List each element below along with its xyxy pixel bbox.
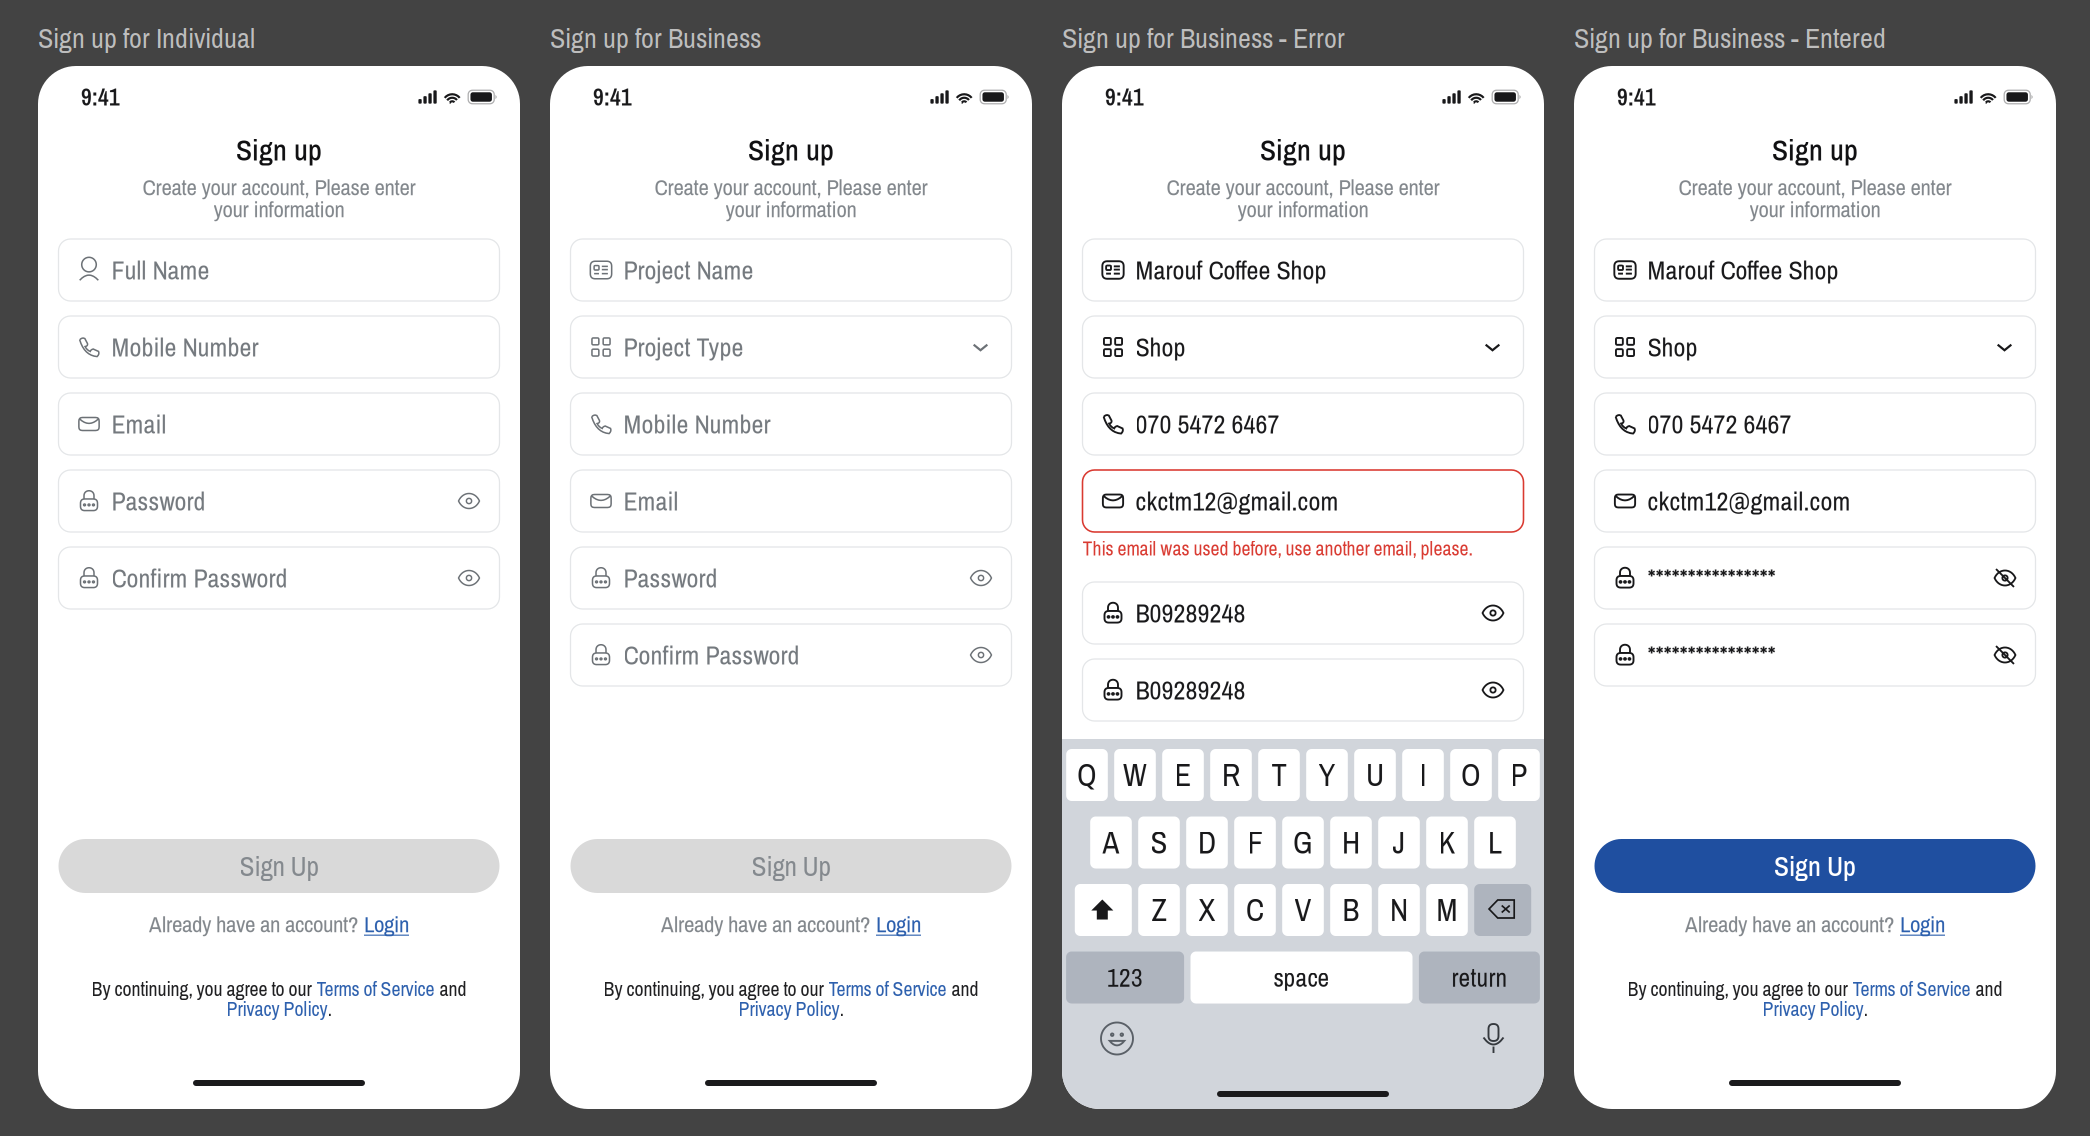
button[interactable]: Z xyxy=(1138,884,1180,936)
staticText: G xyxy=(1293,822,1313,863)
staticText: your information xyxy=(725,194,856,224)
button[interactable]: W xyxy=(1114,749,1156,801)
button[interactable]: Privacy Policy xyxy=(1762,996,1863,1022)
button[interactable]: V xyxy=(1282,884,1324,936)
staticText: I xyxy=(1419,754,1426,796)
staticText: your information xyxy=(213,194,344,224)
button[interactable]: Sign Up xyxy=(570,839,1011,893)
button[interactable]: ckctm12@gmail.com xyxy=(1082,470,1523,532)
button[interactable]: Password xyxy=(58,470,499,532)
button[interactable]: 070 5472 6467 xyxy=(1594,393,2035,455)
button[interactable]: 123 xyxy=(1066,951,1184,1003)
button[interactable]: ckctm12@gmail.com xyxy=(1594,470,2035,532)
staticText: Create your account, Please enter xyxy=(654,172,927,202)
staticText: B xyxy=(1342,889,1359,931)
button[interactable]: U xyxy=(1354,749,1396,801)
staticText: Password xyxy=(623,560,717,595)
button[interactable]: Privacy Policy xyxy=(738,996,839,1022)
button[interactable]: Shop xyxy=(1594,316,2035,378)
button[interactable]: Delete xyxy=(1474,884,1531,936)
button[interactable]: B09289248 xyxy=(1082,582,1523,644)
button[interactable]: space xyxy=(1190,951,1412,1003)
staticText: W xyxy=(1123,754,1147,796)
button[interactable]: R xyxy=(1210,749,1252,801)
button[interactable]: Password xyxy=(570,547,1011,609)
button[interactable]: E xyxy=(1162,749,1204,801)
button[interactable]: S xyxy=(1138,816,1180,868)
staticText: Create your account, Please enter xyxy=(1166,172,1439,202)
button[interactable]: G xyxy=(1282,816,1324,868)
button[interactable]: **************** xyxy=(1594,624,2035,686)
button[interactable]: Confirm Password xyxy=(58,547,499,609)
button[interactable]: Dictation xyxy=(1481,1023,1506,1054)
button[interactable]: Confirm Password xyxy=(570,624,1011,686)
button[interactable]: X xyxy=(1186,884,1228,936)
staticText: P xyxy=(1510,754,1527,796)
button[interactable]: Mobile Number xyxy=(58,316,499,378)
button[interactable]: Privacy Policy xyxy=(226,996,327,1022)
button[interactable]: Shift xyxy=(1075,884,1132,936)
button[interactable]: Project Type xyxy=(570,316,1011,378)
staticText: H xyxy=(1342,822,1360,863)
button[interactable]: D xyxy=(1186,816,1228,868)
button[interactable]: Mobile Number xyxy=(570,393,1011,455)
button[interactable]: Login xyxy=(876,909,921,939)
button[interactable]: 070 5472 6467 xyxy=(1082,393,1523,455)
button[interactable]: Email xyxy=(570,470,1011,532)
staticText: **************** xyxy=(1647,637,1775,672)
button[interactable]: Terms of Service xyxy=(316,976,434,1002)
staticText: space xyxy=(1273,960,1329,994)
staticText: A xyxy=(1102,822,1119,863)
button[interactable]: H xyxy=(1330,816,1372,868)
staticText: Confirm Password xyxy=(111,560,287,595)
button[interactable]: Q xyxy=(1066,749,1108,801)
button[interactable]: Email xyxy=(58,393,499,455)
staticText: 123 xyxy=(1107,960,1143,994)
staticText: B09289248 xyxy=(1135,672,1245,707)
staticText: . xyxy=(1863,996,1867,1022)
button[interactable]: Emoji xyxy=(1100,1021,1134,1055)
button[interactable]: T xyxy=(1258,749,1300,801)
staticText: Already have an account? xyxy=(149,909,358,939)
staticText: Sign up for Business - Entered xyxy=(1574,19,1886,57)
staticText: 9:41 xyxy=(1105,81,1144,113)
staticText: and xyxy=(1975,976,2002,1002)
button[interactable]: N xyxy=(1378,884,1420,936)
staticText: Privacy Policy xyxy=(738,996,839,1022)
button[interactable]: Full Name xyxy=(58,239,499,301)
button[interactable]: B xyxy=(1330,884,1372,936)
button[interactable]: J xyxy=(1378,816,1420,868)
button[interactable]: **************** xyxy=(1594,547,2035,609)
button[interactable]: Marouf Coffee Shop xyxy=(1082,239,1523,301)
button[interactable]: Sign Up xyxy=(58,839,499,893)
staticText: This email was used before, use another … xyxy=(1082,535,1472,562)
button[interactable]: Login xyxy=(1900,909,1945,939)
button[interactable]: Terms of Service xyxy=(828,976,946,1002)
staticText: Sign Up xyxy=(751,848,830,884)
button[interactable]: P xyxy=(1498,749,1540,801)
button[interactable]: Terms of Service xyxy=(1852,976,1970,1002)
button[interactable]: B09289248 xyxy=(1082,659,1523,721)
button[interactable]: F xyxy=(1234,816,1276,868)
staticText: N xyxy=(1390,889,1408,931)
button[interactable]: Login xyxy=(364,909,409,939)
button[interactable]: I xyxy=(1402,749,1444,801)
button[interactable]: C xyxy=(1234,884,1276,936)
button[interactable]: Sign Up xyxy=(1594,839,2035,893)
staticText: and xyxy=(951,976,978,1002)
button[interactable]: K xyxy=(1426,816,1468,868)
button[interactable]: Shop xyxy=(1082,316,1523,378)
staticText: C xyxy=(1246,889,1264,931)
staticText: . xyxy=(327,996,331,1022)
button[interactable]: M xyxy=(1426,884,1468,936)
button[interactable]: return xyxy=(1419,951,1540,1003)
button[interactable]: Marouf Coffee Shop xyxy=(1594,239,2035,301)
staticText: Login xyxy=(364,909,409,939)
button[interactable]: O xyxy=(1450,749,1492,801)
button[interactable]: L xyxy=(1474,816,1516,868)
button[interactable]: Y xyxy=(1306,749,1348,801)
button[interactable]: Project Name xyxy=(570,239,1011,301)
staticText: M xyxy=(1436,889,1457,931)
staticText: Email xyxy=(111,406,166,441)
button[interactable]: A xyxy=(1090,816,1132,868)
